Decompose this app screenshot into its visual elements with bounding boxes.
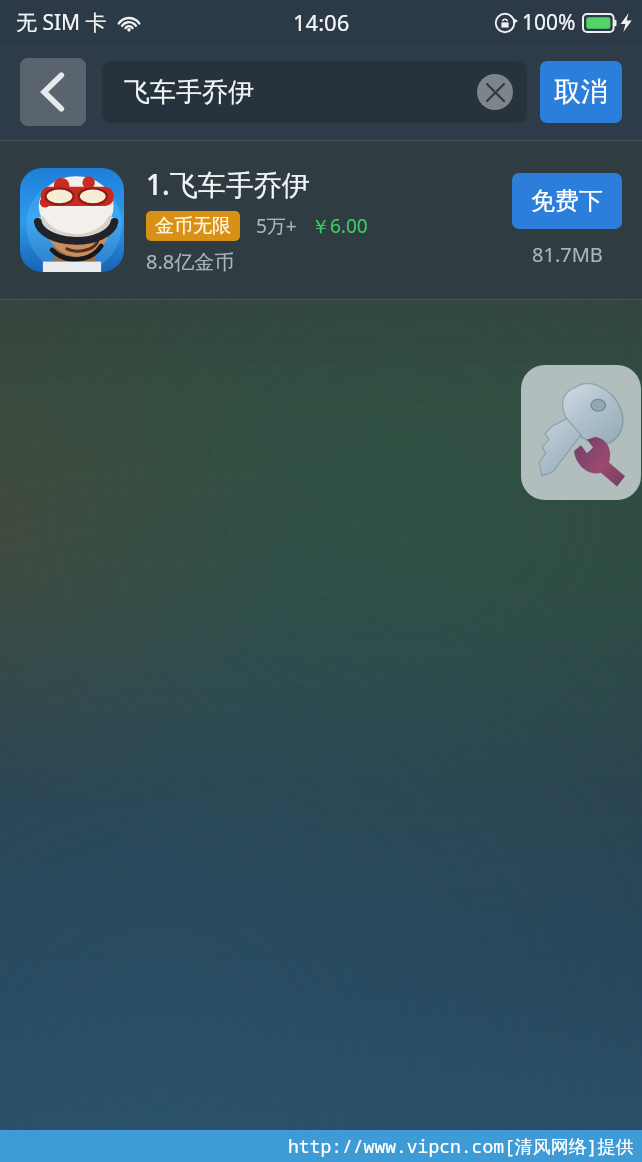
button[interactable]: 飞车手乔伊 xyxy=(102,61,527,123)
staticText: 无 SIM 卡 xyxy=(16,8,107,37)
button[interactable]: Clear text xyxy=(477,74,513,110)
button[interactable]: Key tool app xyxy=(521,365,641,500)
staticText: 100% xyxy=(522,8,576,37)
staticText: 金币无限 xyxy=(155,214,231,238)
staticText: 飞车手乔伊 xyxy=(124,76,254,109)
button[interactable]: 取消 xyxy=(540,61,622,123)
staticText: 免费下 xyxy=(531,186,603,216)
staticText: 1.飞车手乔伊 xyxy=(146,165,310,203)
staticText: 8.8亿金币 xyxy=(146,248,235,275)
staticText: http://www.vipcn.com[清风网络]提供 xyxy=(288,1134,634,1159)
staticText: 81.7MB xyxy=(532,241,603,268)
button[interactable]: 免费下 xyxy=(512,173,622,229)
button[interactable]: Back xyxy=(20,58,86,126)
staticText: 5万+ xyxy=(256,213,297,239)
staticText: 取消 xyxy=(554,75,608,109)
staticText: ￥6.00 xyxy=(311,213,368,239)
staticText: 14:06 xyxy=(293,7,350,37)
button[interactable]: 1.飞车手乔伊 xyxy=(0,140,642,300)
